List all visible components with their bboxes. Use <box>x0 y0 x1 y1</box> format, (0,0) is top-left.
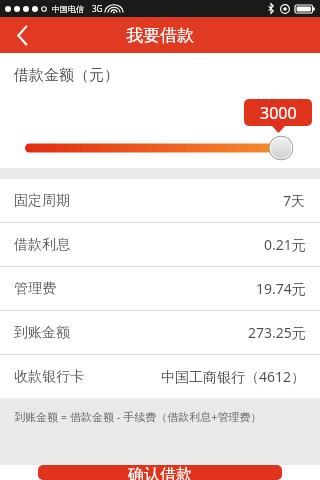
staticText: 借款金额（元） <box>14 66 119 85</box>
button[interactable]: 管理费 <box>0 267 320 310</box>
button[interactable]: 到账金额 <box>0 311 320 354</box>
button[interactable]: 收款银行卡 <box>0 355 320 398</box>
staticText: 中国电信 <box>52 4 84 14</box>
staticText: 3G <box>92 3 103 14</box>
staticText: 借款利息 <box>14 236 70 254</box>
staticText: 7天 <box>283 191 306 210</box>
button[interactable]: 固定周期 <box>0 179 320 222</box>
staticText: 确认借款 <box>128 465 192 480</box>
button[interactable]: Loan amount slider <box>0 133 320 163</box>
staticText: 3000 <box>260 102 297 124</box>
button[interactable]: Back <box>0 17 44 53</box>
staticText: 中国工商银行（4612） <box>161 367 306 386</box>
staticText: 收款银行卡 <box>14 368 84 386</box>
staticText: 0.21元 <box>264 235 306 254</box>
staticText: 固定周期 <box>14 192 70 210</box>
staticText: 到账金额 = 借款金额 - 手续费（借款利息+管理费） <box>14 409 262 424</box>
staticText: 273.25元 <box>248 323 306 342</box>
staticText: 19.74元 <box>256 279 306 298</box>
button[interactable]: 借款利息 <box>0 223 320 266</box>
button[interactable]: 确认借款 <box>38 465 282 480</box>
staticText: 到账金额 <box>14 324 70 342</box>
staticText: 管理费 <box>14 280 56 298</box>
staticText: 我要借款 <box>126 25 194 46</box>
